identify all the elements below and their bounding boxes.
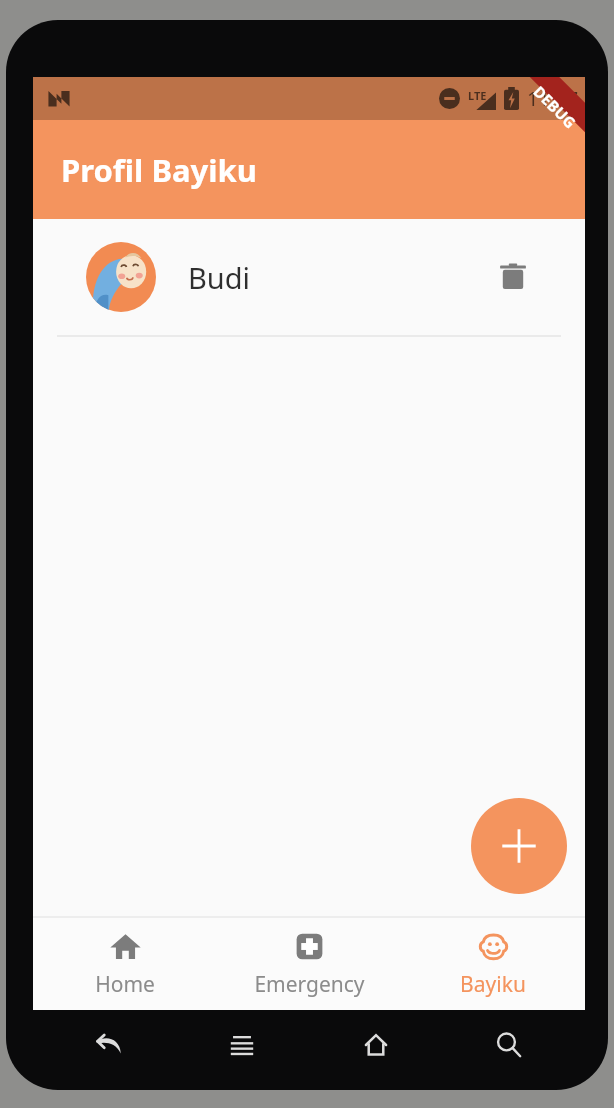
staticText: Budi — [188, 258, 251, 297]
staticText: LTE — [468, 88, 487, 103]
button[interactable]: Add baby profile — [471, 798, 567, 894]
button[interactable]: Back — [85, 1021, 133, 1069]
staticText: DEBUG — [529, 81, 580, 132]
button[interactable]: Budi — [33, 219, 585, 335]
button[interactable]: Recent apps — [218, 1021, 266, 1069]
staticText: Emergency — [254, 970, 365, 999]
staticText: Home — [95, 970, 155, 999]
button[interactable]: Home — [33, 918, 217, 1010]
button[interactable]: Search — [485, 1021, 533, 1069]
button[interactable]: Home — [352, 1021, 400, 1069]
staticText: Bayiku — [460, 970, 526, 999]
staticText: 11:27 — [527, 85, 579, 112]
button[interactable]: Emergency — [217, 918, 401, 1010]
button[interactable]: Delete Budi — [489, 253, 537, 301]
button[interactable]: Bayiku — [401, 918, 585, 1010]
staticText: Profil Bayiku — [61, 149, 257, 191]
